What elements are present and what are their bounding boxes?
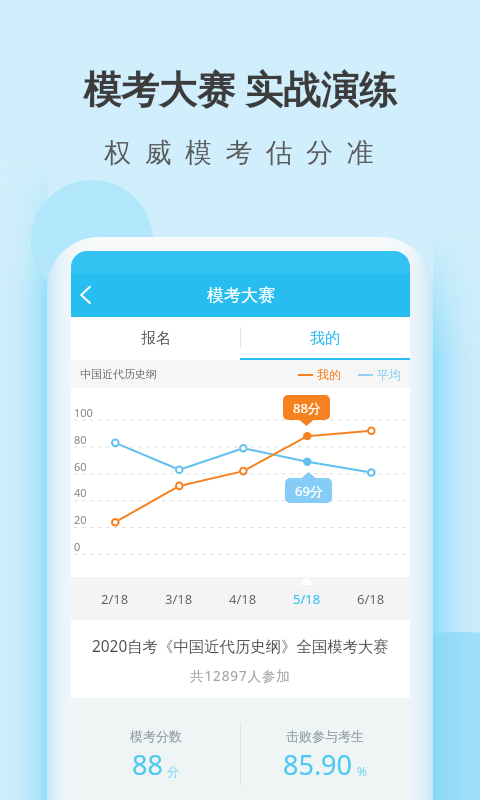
staticText: 击败参与考生 xyxy=(286,728,364,744)
staticText: 6/18 xyxy=(357,590,385,608)
staticText: 88 xyxy=(132,746,163,783)
staticText: % xyxy=(357,763,367,779)
staticText: 共12897人参加 xyxy=(190,667,291,685)
staticText: 69分 xyxy=(295,482,323,500)
staticText: 80 xyxy=(74,432,87,447)
staticText: 85.90 xyxy=(283,746,353,783)
staticText: 4/18 xyxy=(229,590,257,608)
button[interactable]: 我的 xyxy=(240,317,410,360)
staticText: 88分 xyxy=(293,399,321,417)
staticText: 权 威 模 考 估 分 准 xyxy=(104,133,377,170)
staticText: 20 xyxy=(74,512,87,527)
staticText: 报名 xyxy=(141,329,171,348)
staticText: 5/18 xyxy=(293,590,321,608)
staticText: 2020自考《中国近代历史纲》全国模考大赛 xyxy=(92,636,389,657)
staticText: 60 xyxy=(74,459,87,474)
staticText: 模考分数 xyxy=(130,728,182,744)
staticText: 分 xyxy=(167,764,179,779)
staticText: 40 xyxy=(74,485,87,500)
staticText: 我的 xyxy=(317,367,341,382)
staticText: 2/18 xyxy=(101,590,129,608)
staticText: 我的 xyxy=(310,329,340,348)
button[interactable]: 报名 xyxy=(71,317,240,360)
staticText: 中国近代历史纲 xyxy=(80,367,157,381)
staticText: 平均 xyxy=(377,367,401,382)
button[interactable]: Back xyxy=(72,278,106,312)
staticText: 3/18 xyxy=(165,590,193,608)
staticText: 100 xyxy=(74,405,93,420)
staticText: 模考大赛 实战演练 xyxy=(83,62,397,114)
staticText: 0 xyxy=(74,539,81,554)
staticText: 模考大赛 xyxy=(207,285,275,306)
